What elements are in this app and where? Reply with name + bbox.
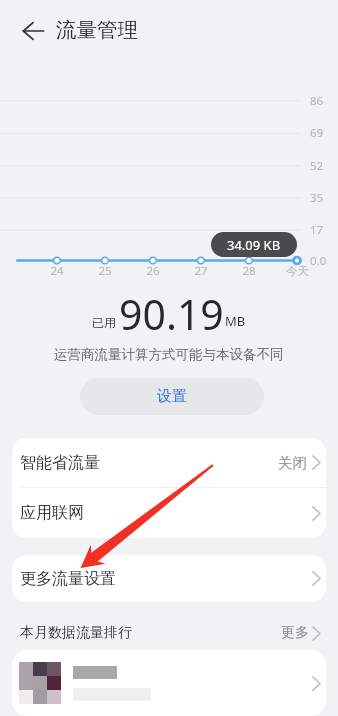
button[interactable]: 更多流量设置 [12,555,326,602]
button[interactable]: 更多 [281,624,322,642]
staticText: 86 [310,93,324,109]
staticText: MB [225,312,246,330]
staticText: 已用 [92,315,116,330]
staticText: 智能省流量 [20,453,100,473]
staticText: 27 [194,263,208,279]
staticText: 34.09 KB [227,236,281,254]
staticText: 关闭 [278,454,307,472]
staticText: 流量管理 [56,17,138,43]
staticText: 本月数据流量排行 [20,624,132,642]
staticText: 17 [310,222,324,238]
staticText: 更多流量设置 [20,569,116,589]
staticText: 90.19 [119,286,224,336]
staticText: 0.0 [310,253,327,269]
staticText: 69 [310,125,324,141]
button[interactable]: 智能省流量 [12,438,326,487]
button[interactable]: 设置 [80,378,264,415]
staticText: 52 [310,158,324,174]
staticText: 35 [310,190,324,206]
button[interactable]: 应用联网 [12,488,326,538]
staticText: 运营商流量计算方式可能与本设备不同 [54,346,284,363]
staticText: 26 [146,263,160,279]
staticText: 设置 [157,387,187,406]
staticText: 24 [50,263,64,279]
staticText: 更多 [281,624,309,642]
button[interactable]: Back [12,10,53,51]
staticText: 今天 [286,264,309,278]
staticText: 应用联网 [20,503,84,523]
staticText: 28 [242,263,256,279]
button[interactable] [12,650,326,716]
staticText: 25 [98,263,112,279]
